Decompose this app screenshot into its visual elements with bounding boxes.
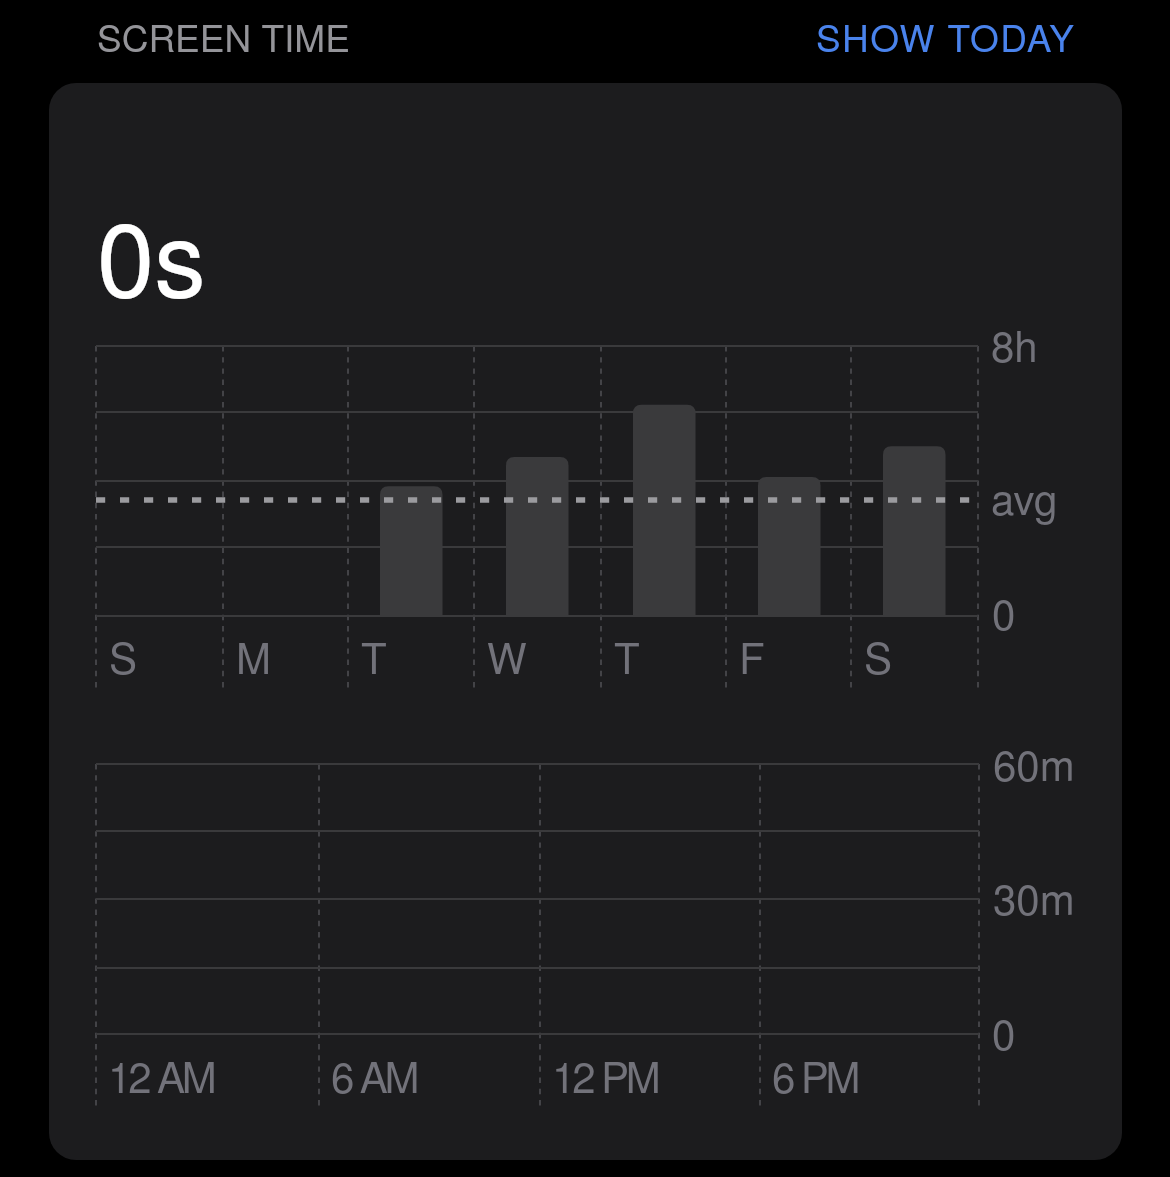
button[interactable]: Screen time chart bbox=[49, 83, 1122, 1160]
staticText: 0 bbox=[992, 582, 1016, 642]
button[interactable]: SHOW TODAY bbox=[800, 0, 1092, 75]
staticText: M bbox=[236, 626, 271, 686]
staticText: 12 PM bbox=[552, 1045, 658, 1105]
staticText: SHOW TODAY bbox=[816, 10, 1076, 63]
staticText: F bbox=[739, 626, 765, 686]
staticText: T bbox=[361, 626, 387, 686]
staticText: 6 AM bbox=[331, 1045, 417, 1105]
staticText: 8h bbox=[991, 314, 1038, 374]
staticText: 0 bbox=[992, 1002, 1016, 1062]
staticText: W bbox=[487, 626, 527, 686]
staticText: T bbox=[614, 626, 640, 686]
staticText: 0s bbox=[97, 179, 206, 326]
staticText: avg bbox=[991, 467, 1058, 527]
staticText: S bbox=[109, 626, 138, 686]
staticText: SCREEN TIME bbox=[97, 10, 350, 63]
staticText: 12 AM bbox=[108, 1045, 214, 1105]
staticText: 30m bbox=[993, 867, 1075, 927]
button[interactable]: SCREEN TIME bbox=[81, 0, 350, 75]
staticText: 60m bbox=[993, 733, 1075, 793]
staticText: S bbox=[864, 626, 893, 686]
staticText: 6 PM bbox=[772, 1045, 858, 1105]
